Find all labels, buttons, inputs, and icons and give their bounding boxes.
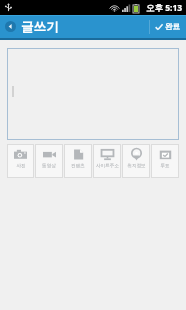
other: 투표: [159, 148, 172, 161]
other: 위치정보: [130, 148, 143, 161]
button[interactable]: 투표: [151, 144, 179, 178]
other: 동영상: [43, 148, 56, 161]
other: 사진: [14, 148, 27, 161]
button[interactable]: 뒤로: [0, 15, 65, 38]
button[interactable]: 컨텐츠: [64, 144, 92, 178]
other: 뒤로: [5, 21, 16, 32]
staticText: 사진: [16, 163, 26, 169]
button[interactable]: 위치정보: [122, 144, 150, 178]
button[interactable]: 사진: [7, 144, 34, 178]
staticText: 글쓰기: [21, 19, 59, 35]
staticText: 컨텐츠: [71, 163, 85, 169]
other: 컨텐츠: [72, 148, 85, 161]
button[interactable]: 동영상: [35, 144, 63, 178]
staticText: 위치정보: [127, 163, 146, 169]
staticText: 동영상: [42, 163, 56, 169]
staticText: 투표: [160, 163, 170, 169]
staticText: 완료: [165, 22, 180, 31]
staticText: 오후 5:13: [146, 2, 183, 14]
staticText: 사이트주소: [96, 163, 119, 169]
button[interactable]: 사이트주소: [93, 144, 121, 178]
other: 사이트주소: [101, 148, 114, 161]
button[interactable]: 완료: [143, 15, 186, 38]
button[interactable]: [7, 48, 179, 140]
